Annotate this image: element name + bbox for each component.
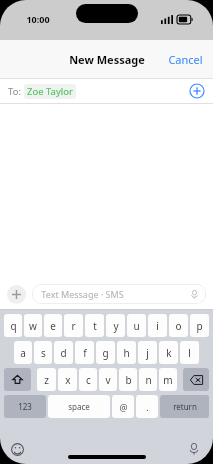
button[interactable]: f bbox=[75, 341, 94, 364]
staticText: return bbox=[173, 401, 197, 412]
staticText: l bbox=[188, 346, 191, 360]
button[interactable]: d bbox=[54, 341, 73, 364]
button[interactable]: n bbox=[139, 368, 157, 391]
staticText: p bbox=[196, 319, 203, 333]
button[interactable]: c bbox=[79, 368, 97, 391]
staticText: n bbox=[145, 373, 152, 387]
staticText: Zoe Taylor bbox=[27, 85, 73, 98]
button[interactable]: 123 bbox=[4, 395, 46, 418]
button[interactable]: space bbox=[48, 395, 110, 418]
other: Dictate bbox=[190, 290, 199, 299]
button[interactable]: a bbox=[14, 341, 32, 364]
staticText: e bbox=[50, 319, 56, 333]
staticText: Cancel bbox=[168, 52, 203, 67]
staticText: 10:00 bbox=[26, 13, 50, 25]
staticText: i bbox=[156, 319, 159, 333]
button[interactable]: Shift bbox=[4, 368, 31, 391]
button[interactable]: e bbox=[44, 314, 62, 337]
button[interactable]: Dictation bbox=[188, 443, 200, 455]
button[interactable]: o bbox=[169, 314, 188, 337]
staticText: y bbox=[113, 319, 119, 333]
staticText: z bbox=[44, 373, 49, 387]
button[interactable]: b bbox=[119, 368, 137, 391]
button[interactable]: @ bbox=[112, 395, 134, 418]
button[interactable]: k bbox=[159, 341, 178, 364]
button[interactable]: Zoe Taylor bbox=[24, 84, 76, 99]
button[interactable]: y bbox=[106, 314, 125, 337]
button[interactable]: Cancel bbox=[158, 44, 213, 75]
staticText: r bbox=[71, 319, 76, 333]
staticText: w bbox=[29, 319, 37, 333]
staticText: k bbox=[166, 346, 172, 360]
button[interactable]: w bbox=[24, 314, 42, 337]
button[interactable]: j bbox=[138, 341, 157, 364]
staticText: Text Message · SMS bbox=[41, 288, 124, 300]
button[interactable]: i bbox=[148, 314, 167, 337]
button[interactable]: return bbox=[160, 395, 209, 418]
button[interactable]: s bbox=[34, 341, 52, 364]
button[interactable]: t bbox=[85, 314, 104, 337]
staticText: s bbox=[41, 346, 46, 360]
button[interactable]: x bbox=[58, 368, 77, 391]
button[interactable]: Emoji bbox=[11, 443, 24, 456]
staticText: a bbox=[20, 346, 26, 360]
staticText: x bbox=[65, 373, 71, 387]
staticText: u bbox=[133, 319, 140, 333]
button[interactable]: Text Message · SMS bbox=[32, 284, 206, 304]
staticText: j bbox=[146, 346, 149, 360]
staticText: q bbox=[10, 319, 17, 333]
button[interactable]: m bbox=[159, 368, 177, 391]
button[interactable]: q bbox=[4, 314, 22, 337]
staticText: New Message bbox=[69, 52, 145, 67]
staticText: o bbox=[175, 319, 182, 333]
button[interactable]: g bbox=[96, 341, 115, 364]
button[interactable]: u bbox=[127, 314, 146, 337]
staticText: v bbox=[105, 373, 111, 387]
staticText: b bbox=[125, 373, 132, 387]
staticText: @ bbox=[119, 401, 128, 413]
button[interactable]: l bbox=[180, 341, 199, 364]
staticText: 123 bbox=[18, 401, 32, 412]
staticText: t bbox=[93, 319, 97, 333]
button[interactable]: Attach bbox=[7, 285, 26, 304]
button[interactable]: Add contact bbox=[189, 83, 205, 99]
button[interactable]: h bbox=[117, 341, 136, 364]
button[interactable]: Backspace bbox=[183, 368, 209, 391]
staticText: c bbox=[86, 373, 91, 387]
button[interactable]: r bbox=[64, 314, 83, 337]
staticText: . bbox=[146, 401, 149, 413]
button[interactable]: v bbox=[99, 368, 117, 391]
button[interactable]: z bbox=[37, 368, 56, 391]
staticText: To: bbox=[8, 85, 21, 98]
button[interactable]: p bbox=[190, 314, 209, 337]
button[interactable]: . bbox=[136, 395, 158, 418]
staticText: m bbox=[163, 373, 173, 387]
staticText: space bbox=[68, 401, 90, 412]
staticText: f bbox=[83, 346, 87, 360]
staticText: g bbox=[102, 346, 109, 360]
staticText: d bbox=[60, 346, 67, 360]
staticText: h bbox=[123, 346, 130, 360]
